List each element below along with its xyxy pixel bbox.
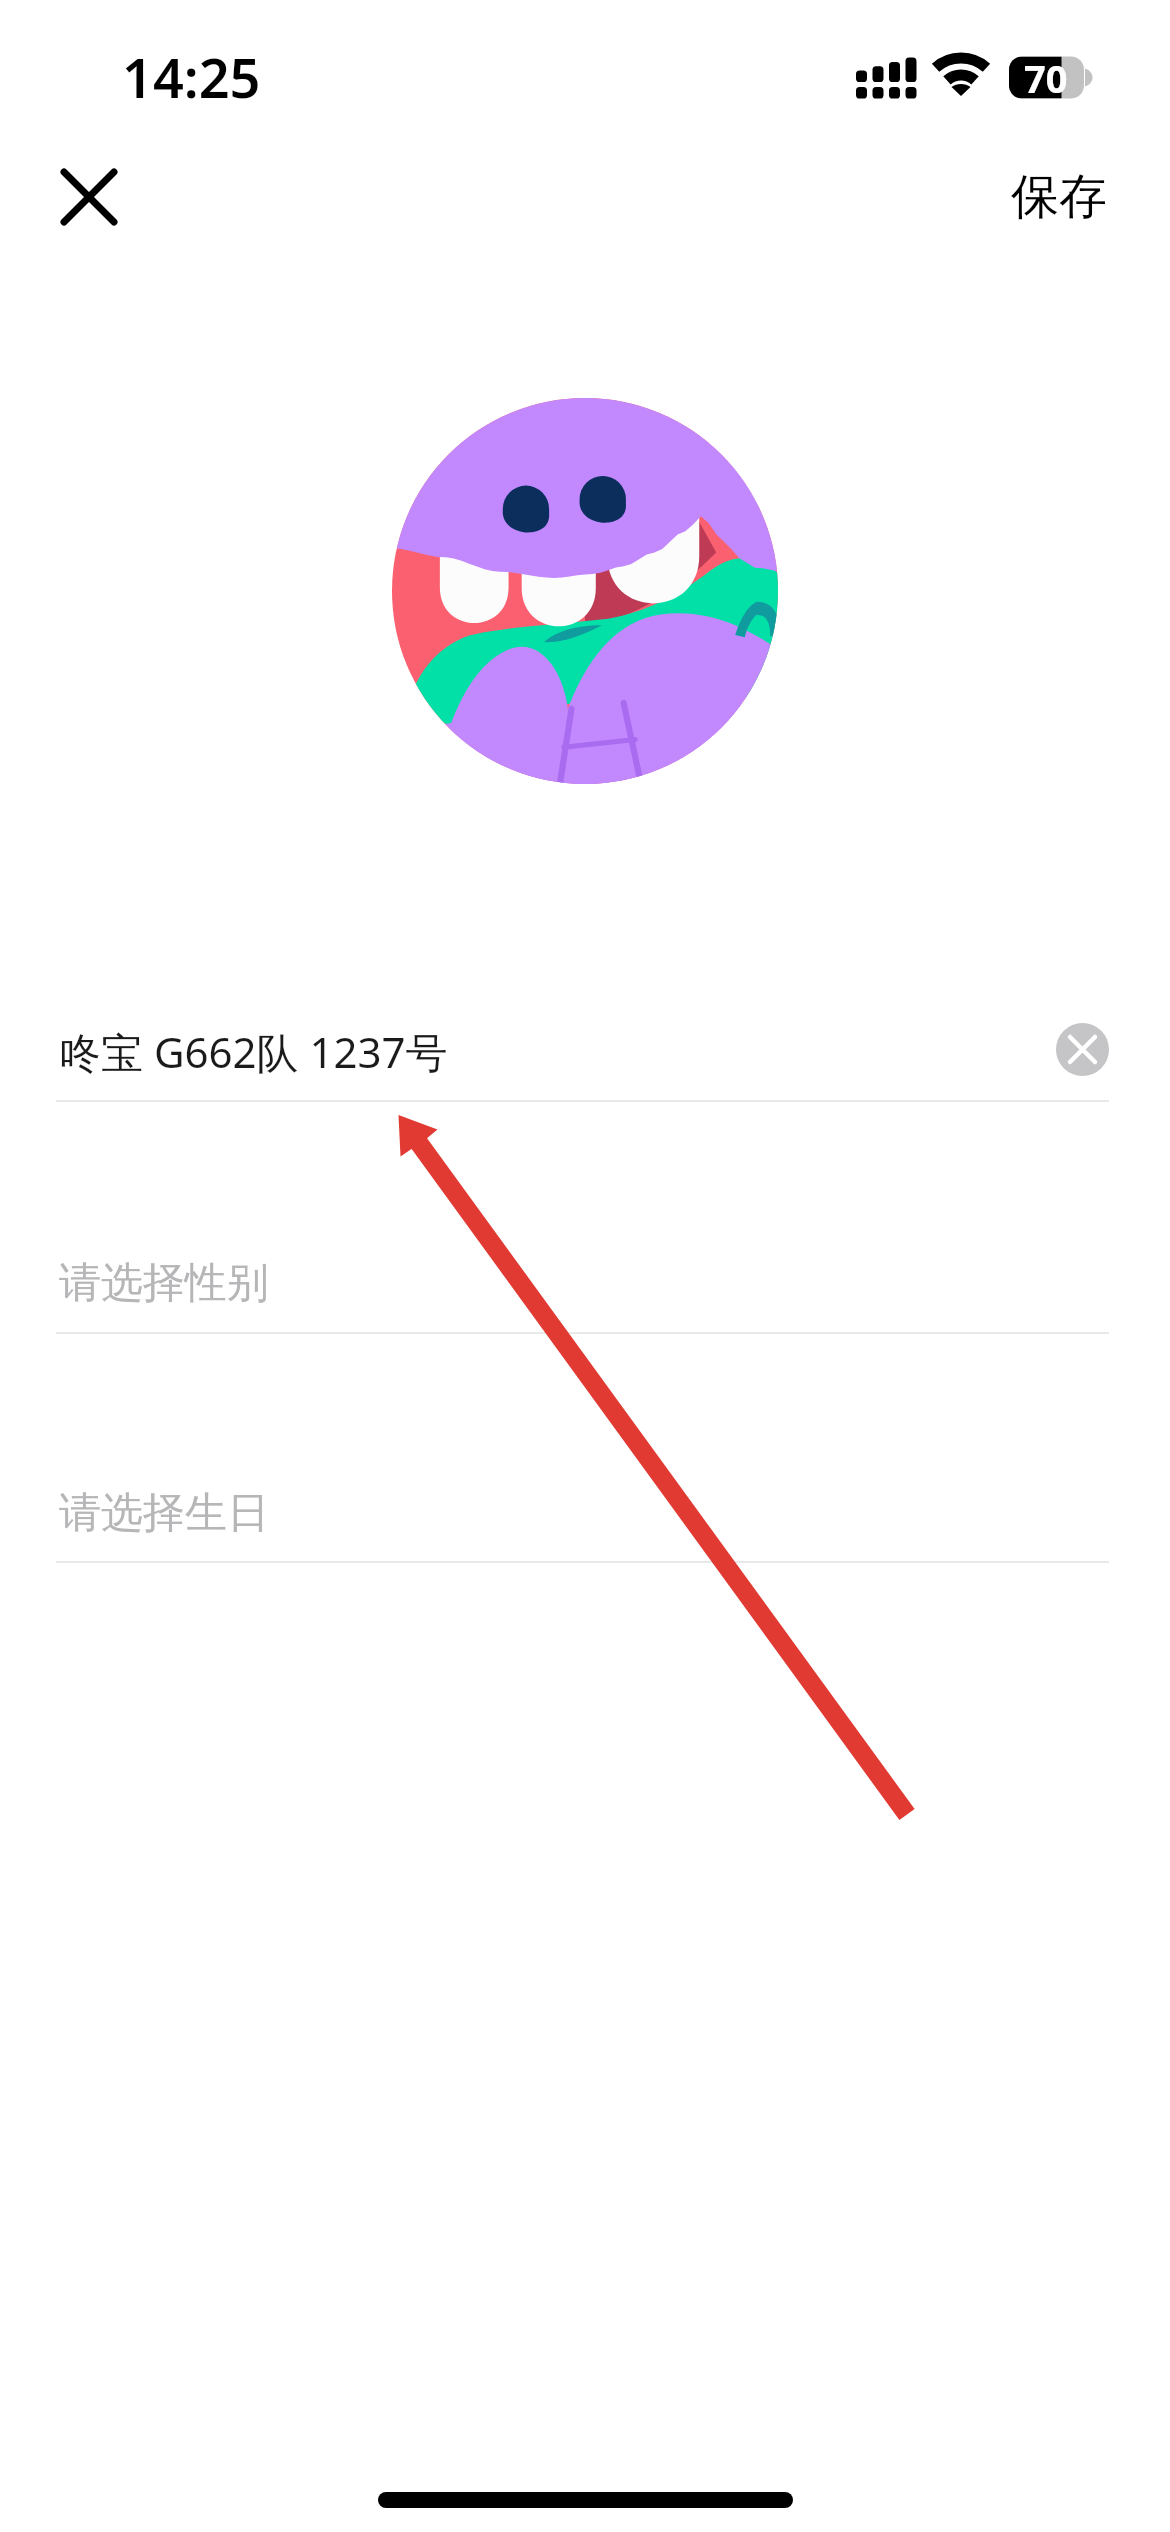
button[interactable]: 保存 (994, 152, 1124, 242)
staticText: 保存 (1011, 167, 1107, 227)
staticText: 70 (1024, 52, 1068, 104)
staticText: 咚宝 G662队 1237号 (59, 1023, 448, 1080)
button[interactable]: Clear text (1056, 1023, 1109, 1076)
button[interactable]: Close (40, 148, 138, 246)
button[interactable]: 咚宝 G662队 1237号 (0, 975, 1170, 1102)
button[interactable]: 请选择性别 (0, 1209, 1170, 1334)
other: Annotation arrow (0, 0, 1170, 2532)
button[interactable]: 请选择生日 (0, 1439, 1170, 1563)
staticText: 请选择性别 (59, 1257, 269, 1310)
staticText: 请选择生日 (59, 1487, 269, 1540)
staticText: 14:25 (122, 40, 261, 114)
